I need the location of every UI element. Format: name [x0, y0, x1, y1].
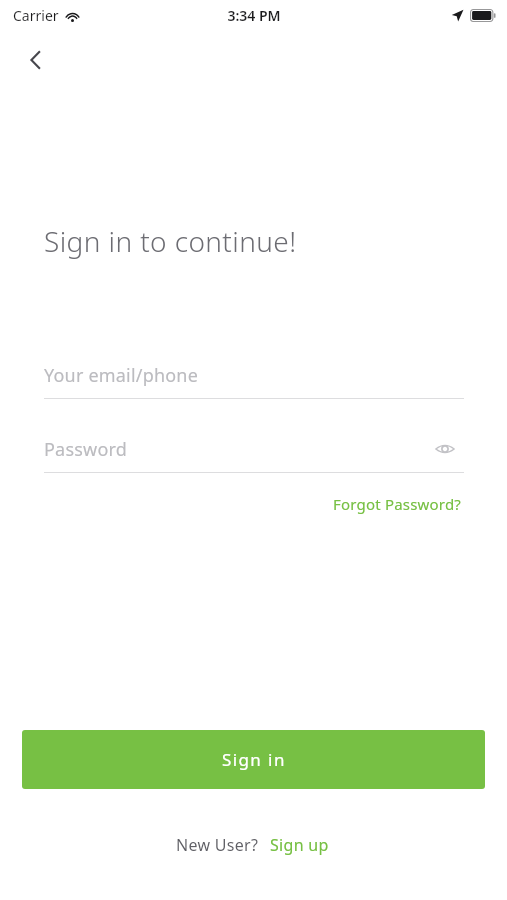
staticText: Your email/phone	[44, 363, 199, 388]
staticText: Password	[44, 437, 128, 462]
staticText: New User?	[176, 834, 259, 856]
staticText: 3:34 PM	[227, 6, 281, 25]
button[interactable]: Sign up	[268, 832, 331, 858]
staticText: Forgot Password?	[333, 494, 462, 514]
staticText: Sign in to continue!	[44, 222, 297, 260]
button[interactable]: Show password	[426, 430, 464, 468]
staticText: Sign up	[270, 834, 329, 856]
staticText: Carrier	[13, 6, 59, 25]
button[interactable]: Back	[14, 38, 58, 82]
button[interactable]: Forgot Password?	[331, 491, 464, 517]
button[interactable]: Your email/phone	[44, 352, 464, 398]
button[interactable]: Sign in	[22, 730, 485, 789]
staticText: Sign in	[222, 748, 286, 771]
button[interactable]: Password	[44, 426, 464, 472]
